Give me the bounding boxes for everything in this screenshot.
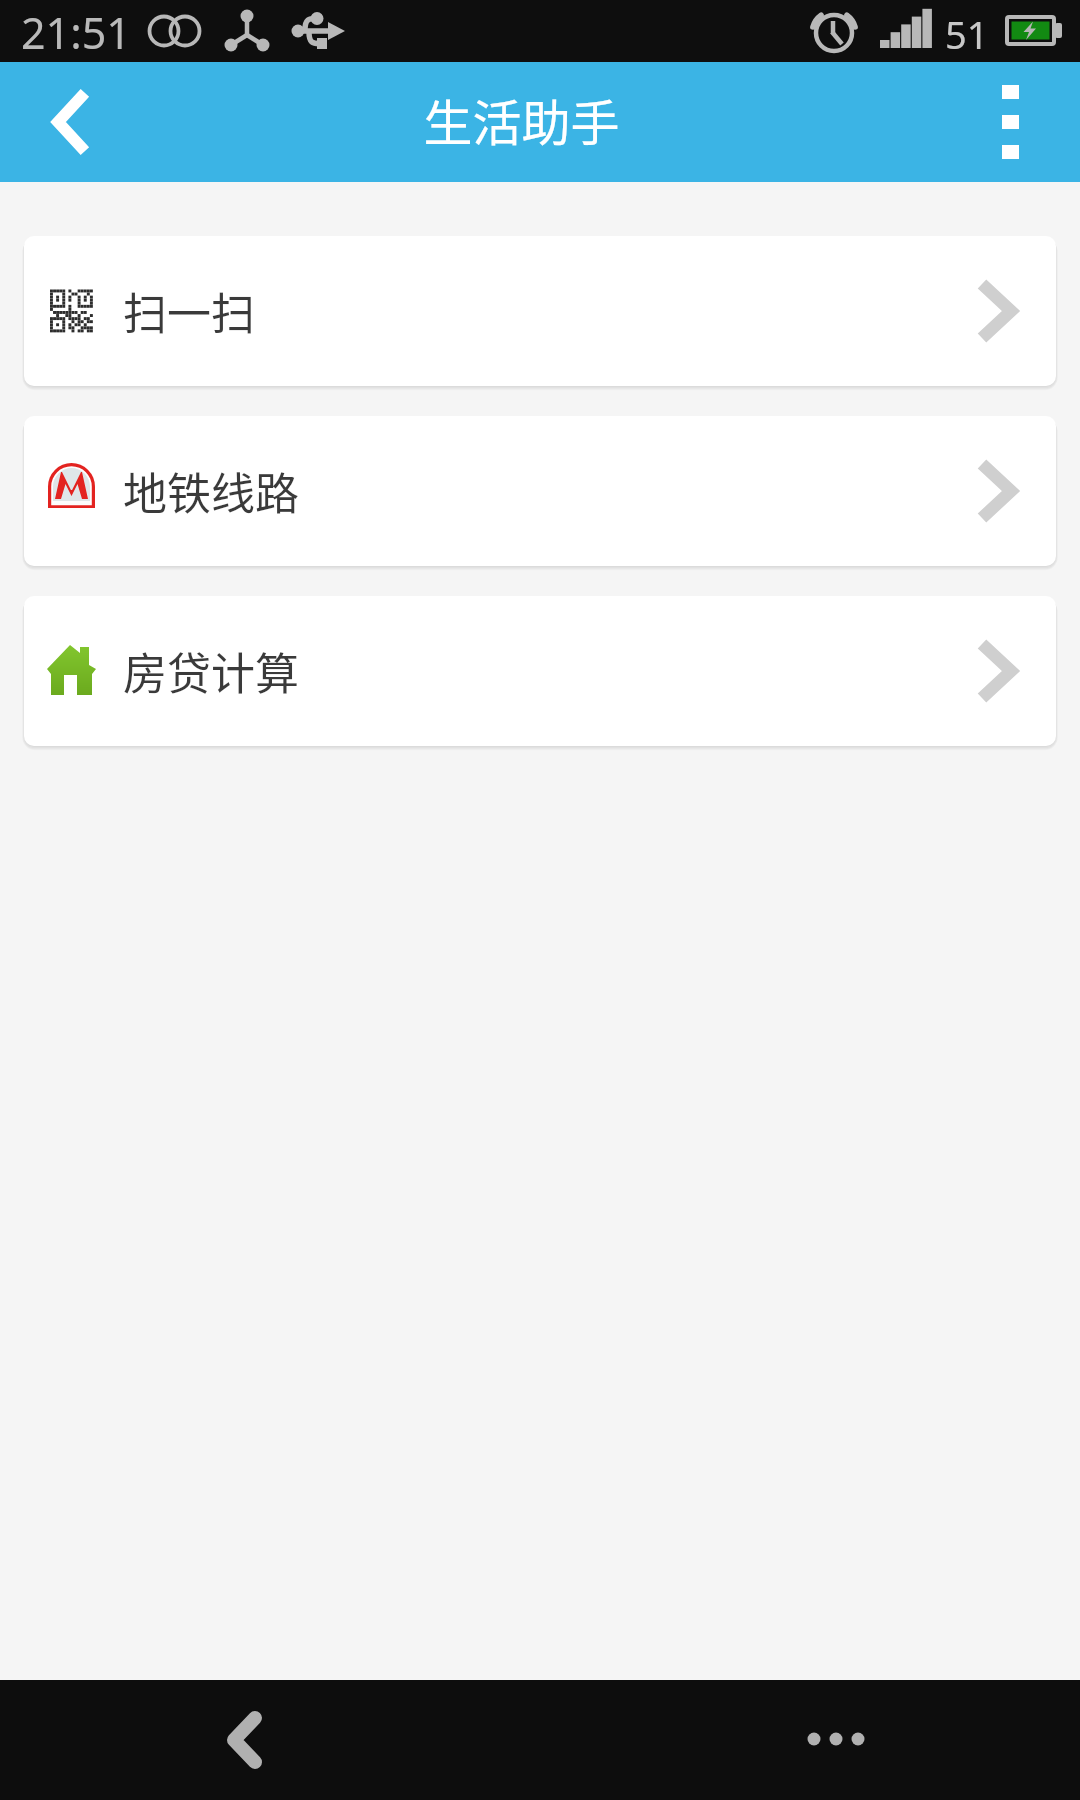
staticText: 51 (945, 8, 989, 60)
button[interactable]: More options (960, 62, 1080, 182)
staticText: 21:51 (21, 3, 131, 62)
button[interactable]: Recent apps (780, 1680, 900, 1800)
staticText: 生活助手 (423, 84, 620, 155)
staticText: 扫一扫 (123, 279, 255, 343)
staticText: 地铁线路 (123, 459, 299, 523)
button[interactable]: Back (0, 62, 140, 182)
button[interactable]: 房贷计算 (24, 596, 1056, 746)
button[interactable]: Back (180, 1680, 310, 1800)
button[interactable]: 扫一扫 (24, 236, 1056, 386)
staticText: 房贷计算 (123, 639, 299, 703)
button[interactable]: 地铁线路 (24, 416, 1056, 566)
